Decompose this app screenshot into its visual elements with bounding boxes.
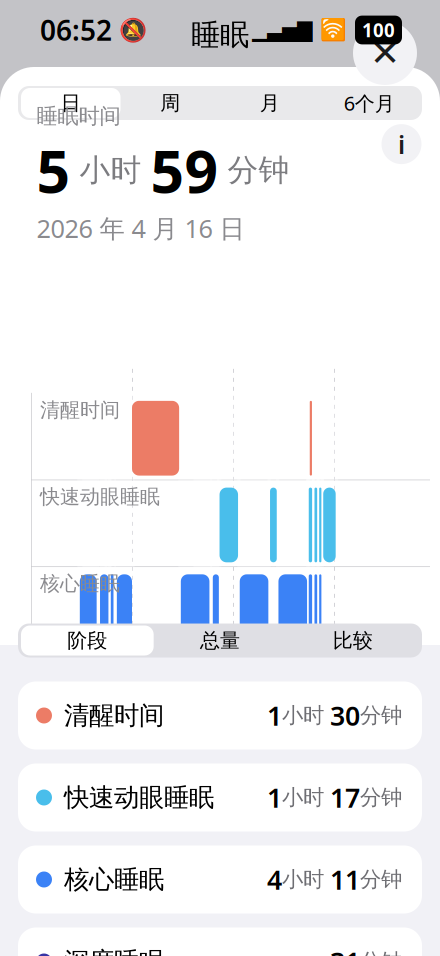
staticText: 核心睡眠	[40, 571, 120, 596]
button[interactable]: 日	[21, 86, 120, 120]
button[interactable]: 信息	[381, 124, 421, 164]
button[interactable]: 阶段	[21, 623, 154, 657]
button[interactable]: 快速动眼睡眠	[18, 763, 422, 831]
button[interactable]: 关闭	[353, 21, 417, 85]
staticText: 06:00	[336, 744, 390, 772]
staticText: 月	[260, 91, 280, 115]
button[interactable]: 清醒时间	[18, 681, 422, 749]
staticText: 59	[150, 131, 218, 209]
staticText: 2026 年 4 月 16 日	[36, 211, 244, 245]
staticText: 小时	[70, 151, 150, 189]
staticText: 06:52	[40, 11, 112, 49]
button[interactable]: 总量	[154, 623, 286, 657]
staticText: 6个月	[344, 90, 395, 116]
staticText: 清醒时间	[56, 700, 164, 731]
staticText: 03:00	[235, 744, 289, 772]
staticText: 30	[330, 698, 360, 733]
staticText: 17	[330, 780, 360, 815]
staticText: i	[398, 127, 405, 161]
staticText: 分钟	[360, 784, 402, 811]
button[interactable]: 月	[220, 86, 319, 120]
staticText: 分钟	[218, 151, 289, 189]
staticText: 总量	[200, 628, 240, 653]
staticText: 比较	[333, 628, 373, 653]
staticText: 分钟	[360, 702, 402, 729]
button[interactable]: 深度睡眠	[18, 927, 422, 956]
staticText: ✕	[370, 33, 400, 73]
staticText: 快速动眼睡眠	[40, 485, 160, 509]
staticText: 深度睡眠	[56, 946, 164, 956]
staticText: ▁▃▅▇	[252, 19, 312, 41]
staticText: 睡眠	[191, 17, 249, 53]
staticText: 🛜	[320, 18, 347, 42]
staticText: 核心睡眠	[56, 864, 164, 895]
staticText: 小时	[282, 702, 330, 729]
staticText: 00:00	[134, 744, 188, 772]
staticText: 快速动眼睡眠	[56, 782, 214, 813]
staticText: 睡眠时间	[36, 103, 120, 129]
staticText: 日	[61, 91, 81, 115]
staticText: 清醒时间	[40, 398, 120, 422]
button[interactable]: 6个月	[319, 86, 419, 120]
staticText: 阶段	[67, 628, 107, 653]
staticText: 1	[267, 698, 282, 733]
staticText: 100	[362, 18, 395, 42]
button[interactable]: 核心睡眠	[18, 845, 422, 913]
staticText: 小时	[282, 784, 330, 811]
button[interactable]: 比较	[286, 623, 419, 657]
staticText: 11	[330, 862, 360, 897]
staticText: 🔕	[119, 17, 147, 43]
staticText: 21:00	[32, 744, 86, 772]
staticText: 31	[330, 944, 360, 956]
staticText: 分钟	[360, 948, 402, 956]
staticText: 周	[160, 91, 180, 115]
staticText: 5	[36, 131, 70, 209]
button[interactable]: 周	[120, 86, 220, 120]
staticText: 深度睡眠	[40, 658, 120, 683]
staticText: 小时	[282, 866, 330, 893]
staticText: 4	[267, 862, 282, 897]
staticText: 1	[267, 780, 282, 815]
staticText: 分钟	[360, 866, 402, 893]
